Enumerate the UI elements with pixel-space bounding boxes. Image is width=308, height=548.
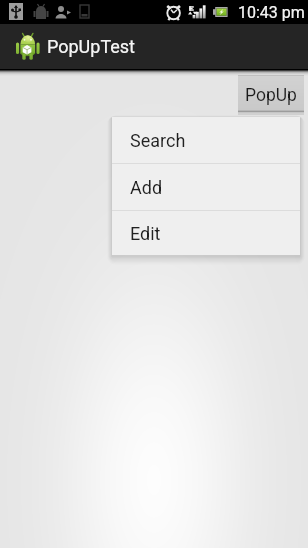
staticText: 10:43 pm [238, 3, 305, 22]
button[interactable]: Edit [112, 211, 300, 255]
staticText: PopUpTest [47, 36, 135, 57]
staticText: Add [130, 177, 163, 198]
button[interactable]: Search [112, 117, 300, 163]
button[interactable]: Add [112, 164, 300, 210]
staticText: Search [130, 130, 186, 151]
button[interactable]: PopUp [238, 75, 304, 113]
staticText: Edit [130, 223, 161, 244]
staticText: PopUp [245, 85, 297, 106]
